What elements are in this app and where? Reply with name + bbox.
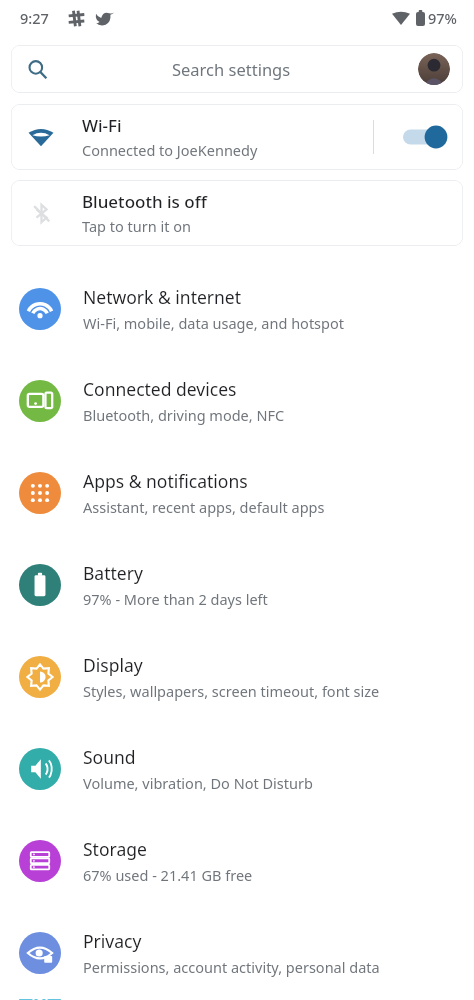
button[interactable]: Account — [418, 53, 450, 85]
staticText: Wi-Fi, mobile, data usage, and hotspot — [83, 313, 344, 333]
button[interactable]: Bluetooth is off — [11, 180, 463, 246]
staticText: Storage — [83, 837, 147, 861]
staticText: Volume, vibration, Do Not Disturb — [83, 773, 313, 793]
button[interactable]: Location — [0, 999, 474, 1000]
staticText: Wi-Fi — [82, 114, 122, 137]
staticText: Styles, wallpapers, screen timeout, font… — [83, 681, 380, 701]
button[interactable]: Apps & notifications — [0, 447, 474, 539]
staticText: Apps & notifications — [83, 469, 248, 493]
staticText: 97% — [428, 8, 457, 28]
staticText: Network & internet — [83, 285, 242, 309]
button[interactable]: Storage — [0, 815, 474, 907]
button[interactable]: Battery — [0, 539, 474, 631]
staticText: Bluetooth, driving mode, NFC — [83, 405, 285, 425]
staticText: Connected to JoeKennedy — [82, 140, 258, 160]
staticText: Privacy — [83, 929, 142, 953]
button[interactable]: Network & internet — [0, 263, 474, 355]
staticText: 9:27 — [20, 8, 49, 28]
staticText: 67% used - 21.41 GB free — [83, 865, 253, 885]
staticText: Connected devices — [83, 377, 237, 401]
button[interactable]: Wi-Fi toggle — [399, 122, 449, 152]
staticText: Sound — [83, 745, 136, 769]
staticText: Permissions, account activity, personal … — [83, 957, 380, 977]
staticText: Battery — [83, 561, 143, 585]
button[interactable]: Connected devices — [0, 355, 474, 447]
staticText: Display — [83, 653, 143, 677]
button[interactable]: Search settings — [11, 45, 463, 93]
button[interactable]: Wi-Fi — [11, 104, 463, 170]
staticText: Tap to turn it on — [82, 216, 191, 236]
button[interactable]: Sound — [0, 723, 474, 815]
button[interactable]: Privacy — [0, 907, 474, 999]
button[interactable]: Display — [0, 631, 474, 723]
staticText: 97% - More than 2 days left — [83, 589, 268, 609]
staticText: Assistant, recent apps, default apps — [83, 497, 325, 517]
staticText: Search settings — [172, 58, 291, 80]
staticText: Bluetooth is off — [82, 190, 207, 213]
